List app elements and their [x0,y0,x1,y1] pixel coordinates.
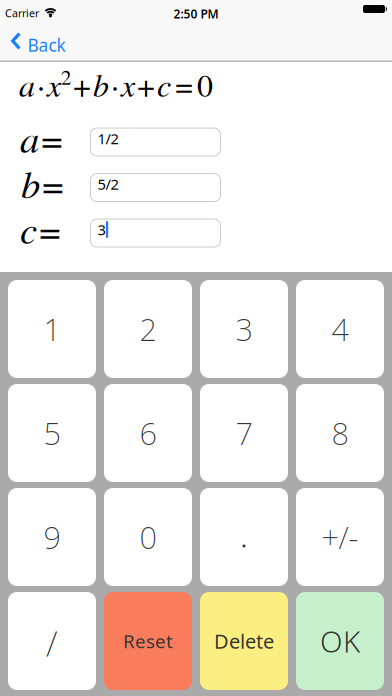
staticText: 9 [43,517,60,557]
staticText: 4 [331,309,348,349]
staticText: 1 [43,309,60,349]
staticText: b = [21,157,64,208]
staticText: 0 [139,517,156,557]
staticText: / [46,620,58,666]
staticText: Carrier [5,6,39,20]
staticText: a = [20,112,63,163]
staticText: a · x2 + b · x + c = 0 [19,63,213,105]
staticText: +/- [321,517,358,557]
staticText: Back [27,33,65,56]
staticText: 8 [331,413,348,453]
staticText: 5 [43,413,60,453]
staticText: 6 [139,413,156,453]
staticText: 5/2 [97,174,118,194]
staticText: 7 [235,413,252,453]
staticText: Reset [123,629,173,653]
staticText: c = [20,203,61,254]
staticText: 1/2 [97,129,118,148]
staticText: Delete [214,628,274,654]
staticText: 2 [139,309,156,349]
staticText: 3 [97,220,105,239]
staticText: 2:50 PM [173,6,218,22]
staticText: OK [320,621,360,660]
staticText: 3 [235,309,252,349]
